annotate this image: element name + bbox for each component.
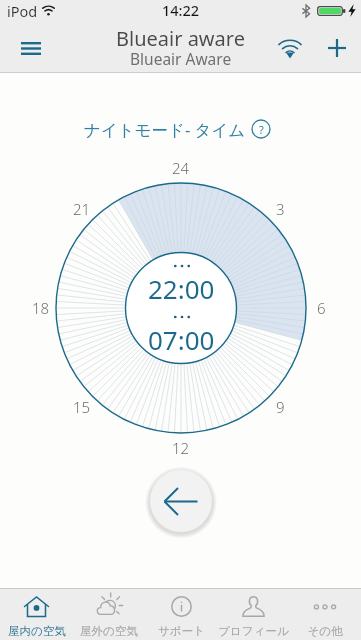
- button[interactable]: サポート: [145, 589, 217, 640]
- staticText: その他: [307, 624, 343, 638]
- button[interactable]: Help: [251, 119, 271, 139]
- button[interactable]: Menu: [18, 36, 63, 61]
- button[interactable]: 屋外の空気: [73, 589, 145, 640]
- button[interactable]: 屋内の空気: [0, 589, 73, 640]
- button[interactable]: Back: [150, 470, 212, 532]
- staticText: 24: [172, 158, 190, 178]
- staticText: 12: [172, 438, 190, 458]
- staticText: サポート: [158, 624, 205, 638]
- staticText: プロフィール: [218, 624, 289, 638]
- staticText: 22:00: [148, 271, 215, 306]
- button[interactable]: プロフィール: [217, 589, 289, 640]
- staticText: 6: [317, 298, 326, 318]
- staticText: 18: [32, 298, 50, 318]
- staticText: iPod: [7, 1, 38, 20]
- staticText: 15: [73, 397, 91, 417]
- button[interactable]: Add: [314, 33, 359, 63]
- staticText: 21: [73, 199, 91, 219]
- staticText: 07:00: [148, 322, 215, 357]
- staticText: 14:22: [162, 0, 200, 20]
- staticText: Blueair aware: [116, 25, 245, 52]
- staticText: ?: [259, 122, 264, 137]
- staticText: Blueair Aware: [130, 48, 232, 69]
- staticText: 9: [276, 397, 285, 417]
- button[interactable]: Wifi: [267, 34, 312, 64]
- staticText: ナイトモード- タイム: [84, 118, 246, 139]
- staticText: 屋内の空気: [8, 624, 66, 638]
- staticText: 屋外の空気: [80, 624, 138, 638]
- button[interactable]: その他: [289, 589, 361, 640]
- staticText: 3: [276, 199, 285, 219]
